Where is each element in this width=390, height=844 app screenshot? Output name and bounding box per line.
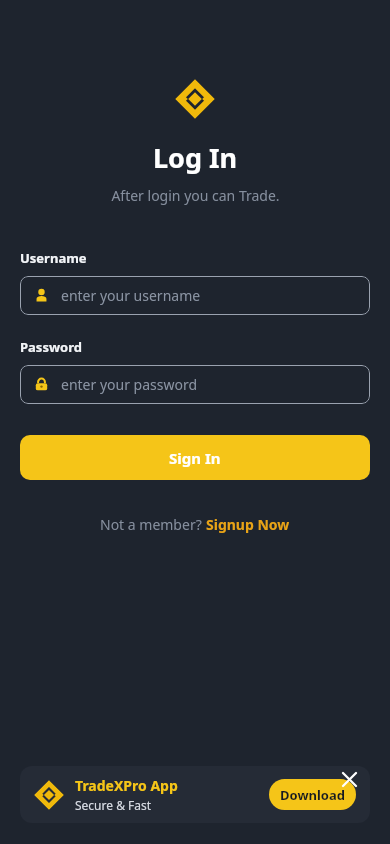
staticText: Not a member? [100,515,206,534]
button[interactable]: TradeXPro App [20,766,370,823]
staticText: Download [280,786,345,804]
button[interactable]: enter your username [20,276,370,315]
staticText: Sign In [169,448,221,468]
staticText: Signup Now [206,515,290,534]
staticText: Username [20,249,87,267]
staticText: Log In [153,139,238,176]
button[interactable]: enter your password [20,365,370,404]
staticText: enter your username [61,286,201,305]
staticText: Password [20,338,82,356]
button[interactable]: Not a member? [96,511,294,538]
staticText: TradeXPro App [75,776,178,795]
staticText: enter your password [61,375,198,394]
button[interactable]: Sign In [20,435,370,480]
staticText: After login you can Trade. [111,186,280,205]
button[interactable]: Close banner [337,767,361,791]
staticText: Secure & Fast [75,797,152,813]
button[interactable]: Download [269,779,356,810]
